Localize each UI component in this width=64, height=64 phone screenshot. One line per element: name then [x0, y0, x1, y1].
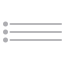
button[interactable]: Settings [3, 36, 62, 44]
button[interactable]: Photos [3, 28, 62, 36]
button[interactable]: Messages [3, 20, 62, 28]
